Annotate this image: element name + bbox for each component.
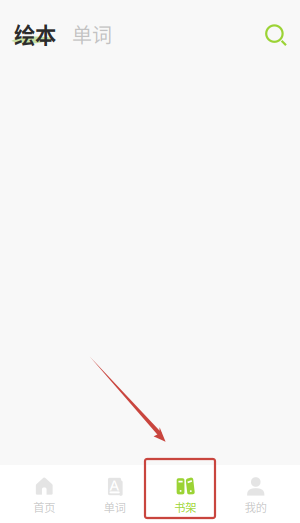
staticText: 单词 xyxy=(72,19,112,48)
button[interactable]: 书架 xyxy=(150,465,220,523)
button[interactable]: 绘本 xyxy=(0,19,56,49)
staticText: 单词 xyxy=(104,499,126,515)
button[interactable]: 首页 xyxy=(9,465,79,523)
staticText: A xyxy=(109,475,119,495)
staticText: 绘本 xyxy=(14,19,56,49)
staticText: 首页 xyxy=(33,499,55,515)
button[interactable]: A xyxy=(79,465,150,523)
button[interactable]: Search xyxy=(256,13,300,55)
staticText: 我的 xyxy=(245,499,267,515)
staticText: 书架 xyxy=(174,499,196,515)
button[interactable]: 单词 xyxy=(56,22,118,46)
button[interactable]: 我的 xyxy=(220,465,291,523)
